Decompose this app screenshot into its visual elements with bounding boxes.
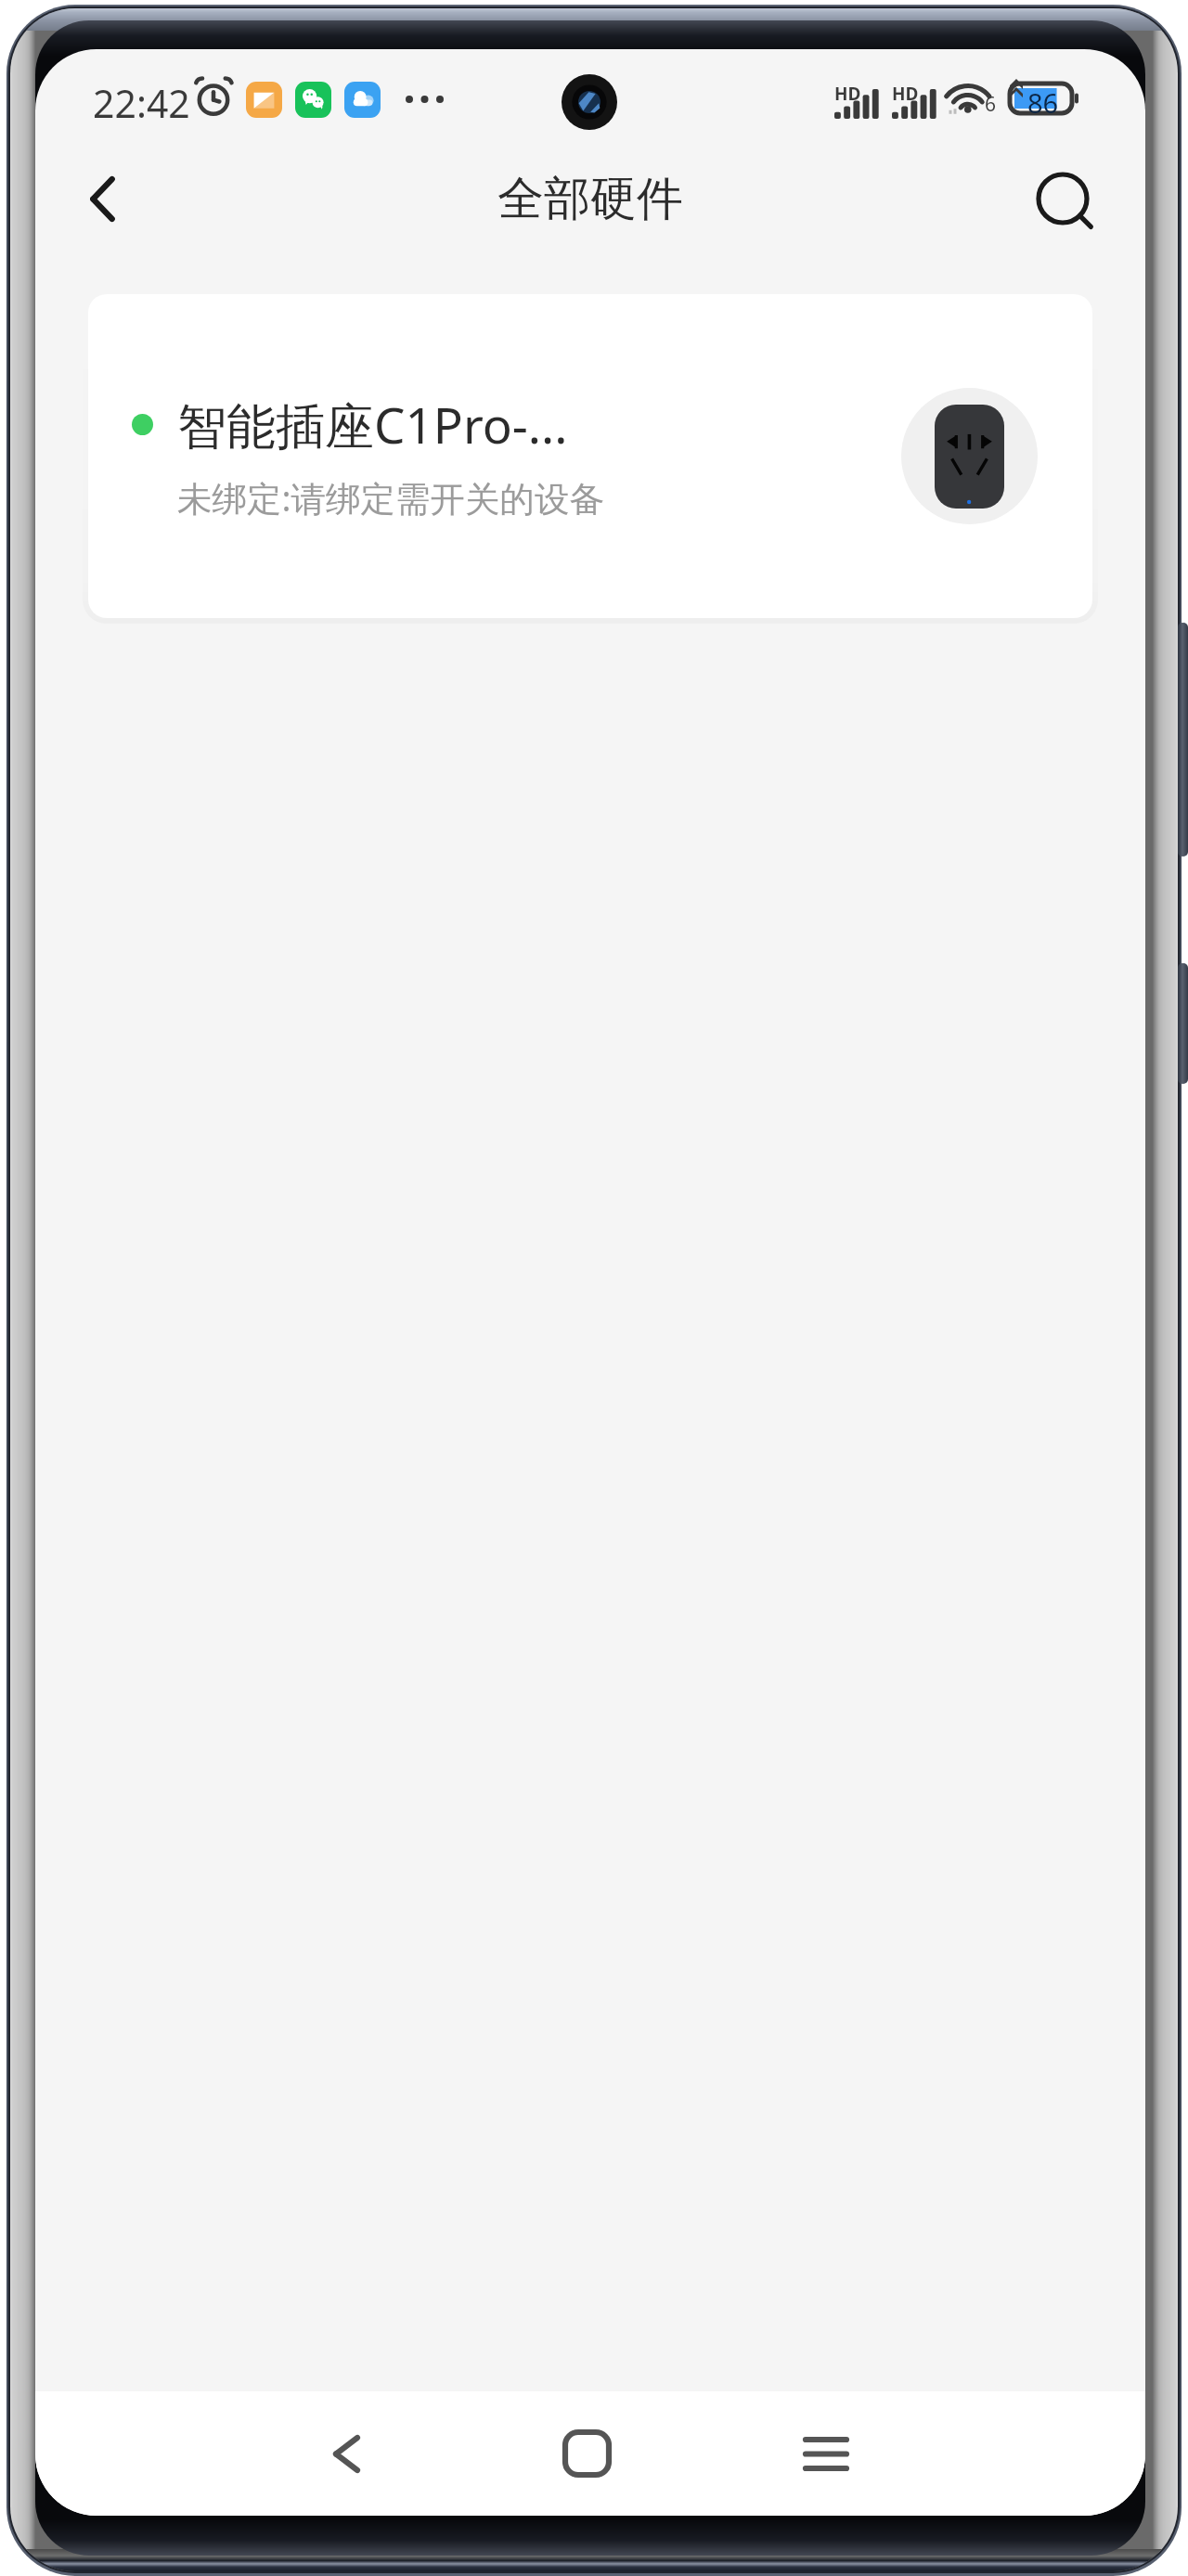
staticText: HD xyxy=(834,82,861,106)
staticText: 智能插座C1Pro-... xyxy=(177,391,568,457)
button[interactable]: Home xyxy=(542,2402,631,2505)
staticText: 全部硬件 xyxy=(497,170,683,228)
button[interactable]: Search xyxy=(1021,154,1110,243)
button[interactable]: Recent apps xyxy=(781,2402,871,2505)
staticText: 未绑定:请绑定需开关的设备 xyxy=(177,474,605,522)
button[interactable]: Back xyxy=(58,154,147,243)
staticText: 86 xyxy=(1027,84,1059,121)
staticText: HD xyxy=(892,82,919,106)
button[interactable]: 智能插座C1Pro-... xyxy=(88,294,1092,618)
staticText: 22:42 xyxy=(93,77,190,129)
staticText: 6 xyxy=(985,91,997,118)
button[interactable]: Back xyxy=(302,2402,391,2505)
